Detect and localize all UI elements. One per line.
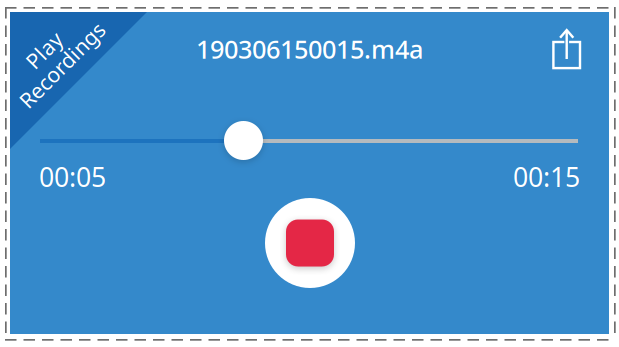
staticText: 00:05 [39,159,106,194]
staticText: Recordings [6,51,117,79]
staticText: Play [23,36,65,64]
staticText: 00:15 [513,159,580,194]
staticText: 190306150015.m4a [196,32,423,66]
button[interactable]: Stop playback [265,198,355,288]
button[interactable]: Share [541,23,593,75]
button[interactable]: Play [10,12,170,172]
button[interactable]: Playback position [40,121,578,161]
